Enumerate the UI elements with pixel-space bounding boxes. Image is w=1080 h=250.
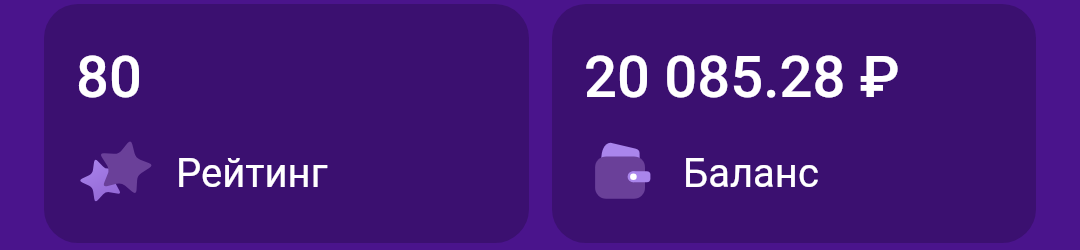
other: Баланс (593, 138, 653, 202)
staticText: 20 085.28 ₽ (584, 43, 900, 111)
button[interactable]: 80 (44, 4, 529, 243)
staticText: Рейтинг (176, 150, 328, 197)
staticText: 80 (76, 43, 142, 111)
button[interactable]: 20 085.28 ₽ (552, 4, 1036, 243)
staticText: Баланс (683, 150, 819, 197)
other: Рейтинг (74, 134, 156, 206)
